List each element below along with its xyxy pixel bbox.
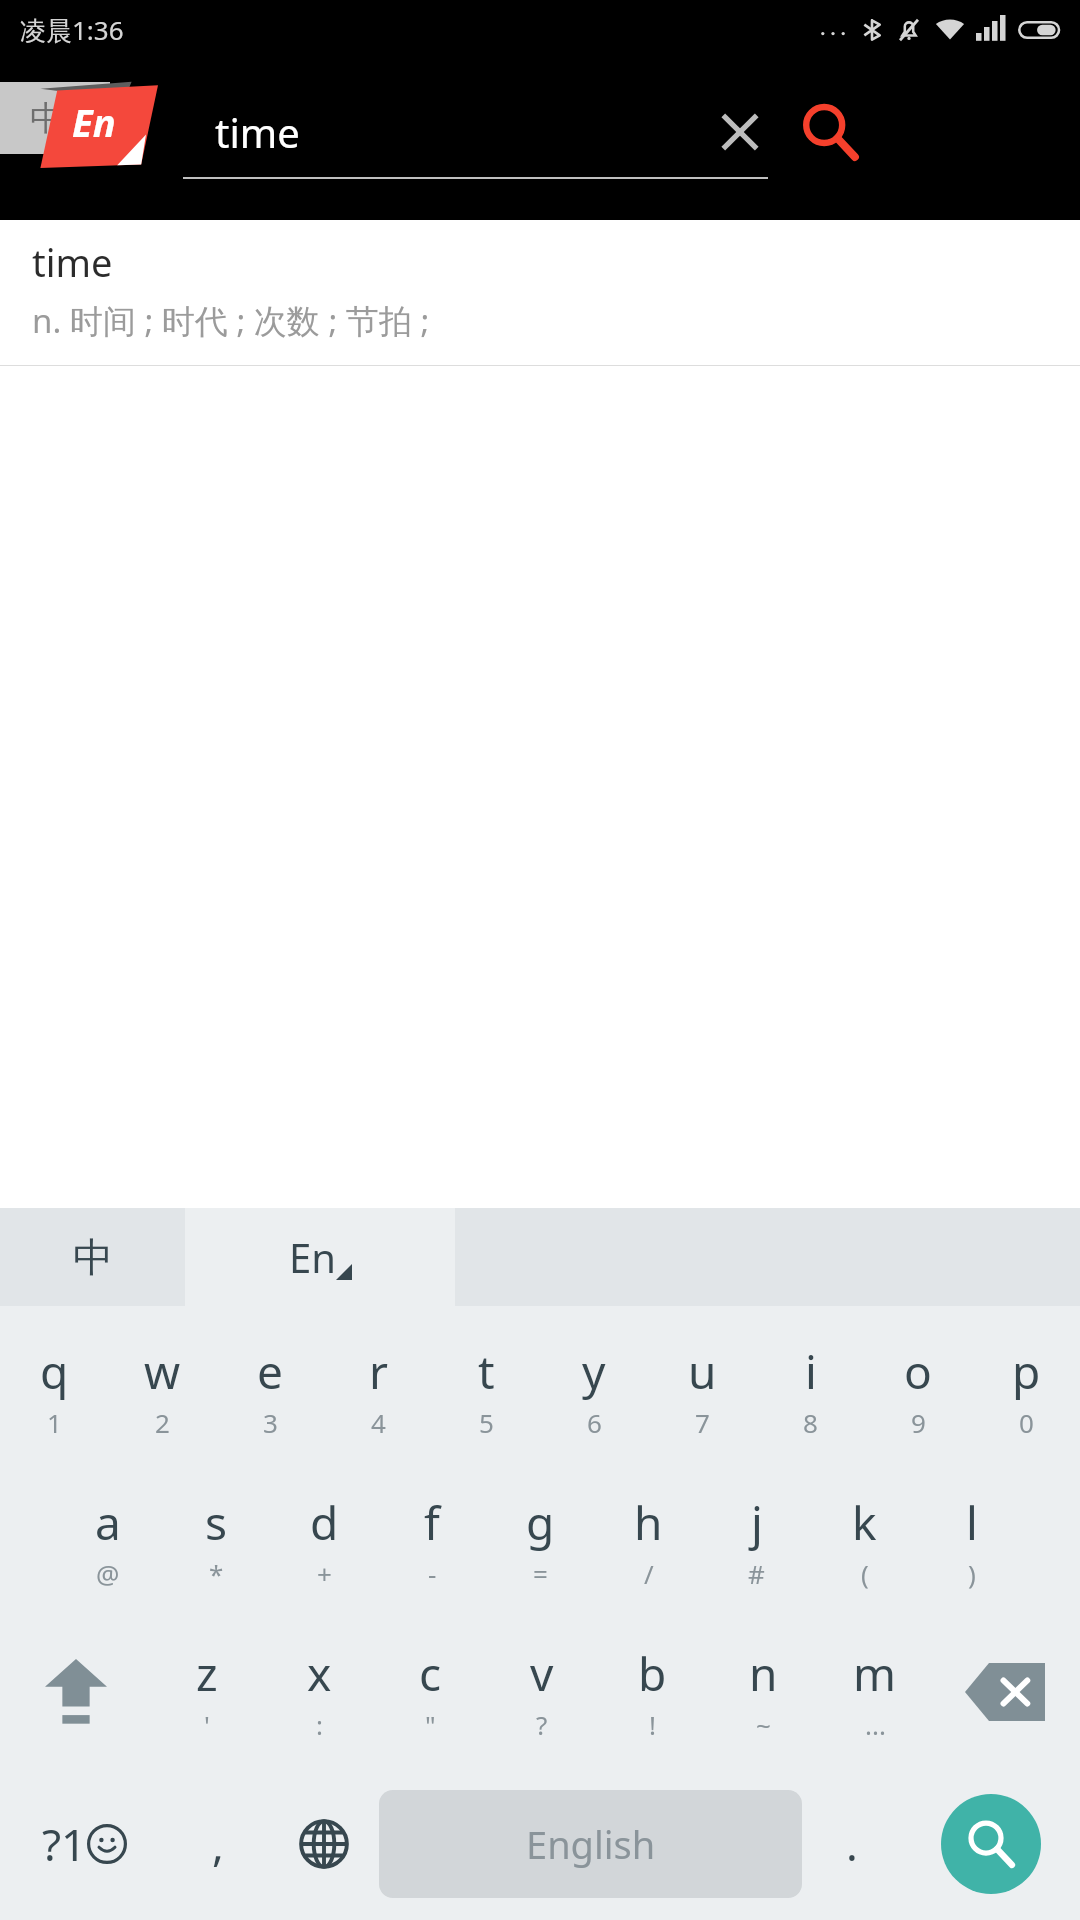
staticText: u	[688, 1340, 717, 1403]
staticText: 3	[263, 1405, 278, 1440]
staticText: c	[419, 1642, 442, 1705]
button[interactable]: Clear	[690, 82, 790, 182]
staticText: k	[852, 1491, 877, 1554]
staticText: (	[861, 1556, 869, 1591]
staticText: r	[369, 1340, 388, 1403]
staticText: 中	[30, 97, 64, 140]
staticText: #	[748, 1556, 765, 1591]
staticText: ?	[536, 1707, 548, 1742]
staticText: 9	[911, 1405, 926, 1440]
staticText: w	[144, 1340, 181, 1403]
button[interactable]: s	[162, 1465, 270, 1616]
button[interactable]: q	[0, 1314, 108, 1465]
staticText: ...	[865, 1707, 886, 1742]
button[interactable]: .	[802, 1768, 902, 1920]
button[interactable]: g	[486, 1465, 594, 1616]
staticText: 8	[803, 1405, 818, 1440]
staticText: 4	[371, 1405, 386, 1440]
button[interactable]: d	[270, 1465, 378, 1616]
staticText: ~	[756, 1707, 771, 1742]
staticText: n	[749, 1642, 778, 1705]
button[interactable]: i	[756, 1314, 864, 1465]
button[interactable]: English mode	[185, 1208, 455, 1306]
staticText: @	[96, 1556, 120, 1591]
button[interactable]: u	[648, 1314, 756, 1465]
staticText: n. 时间 ; 时代 ; 次数 ; 节拍 ;	[32, 298, 430, 343]
button[interactable]: w	[108, 1314, 216, 1465]
button[interactable]: p	[972, 1314, 1080, 1465]
button[interactable]: l	[918, 1465, 1026, 1616]
button[interactable]: Symbols and emoji	[0, 1768, 168, 1920]
staticText: j	[751, 1491, 763, 1554]
button[interactable]: y	[540, 1314, 648, 1465]
staticText: English	[526, 1818, 656, 1870]
staticText: 0	[1019, 1405, 1034, 1440]
staticText: +	[317, 1556, 332, 1591]
staticText: 7	[695, 1405, 710, 1440]
button[interactable]: n	[708, 1616, 819, 1768]
staticText: 凌晨1:36	[20, 12, 124, 48]
button[interactable]: k	[810, 1465, 918, 1616]
staticText: '	[204, 1707, 210, 1742]
staticText: En	[72, 96, 116, 148]
staticText: time	[215, 105, 300, 159]
button[interactable]: English input	[38, 80, 158, 168]
button[interactable]: Shift	[0, 1616, 151, 1768]
staticText: )	[968, 1556, 976, 1591]
staticText: 5	[479, 1405, 494, 1440]
staticText: t	[478, 1340, 495, 1403]
staticText: 中	[73, 1232, 113, 1282]
staticText: -	[428, 1556, 437, 1591]
staticText: p	[1012, 1340, 1041, 1403]
button[interactable]: h	[594, 1465, 702, 1616]
button[interactable]: b	[597, 1616, 708, 1768]
button[interactable]: m	[819, 1616, 930, 1768]
button[interactable]: e	[216, 1314, 324, 1465]
staticText: b	[638, 1642, 667, 1705]
staticText: .	[846, 1814, 858, 1874]
button[interactable]: Search	[902, 1768, 1080, 1920]
button[interactable]: o	[864, 1314, 972, 1465]
button[interactable]: z	[151, 1616, 263, 1768]
button[interactable]: Backspace	[930, 1616, 1080, 1768]
button[interactable]: English	[379, 1790, 802, 1898]
staticText: d	[310, 1491, 339, 1554]
button[interactable]: f	[378, 1465, 486, 1616]
button[interactable]: t	[432, 1314, 540, 1465]
staticText: En	[289, 1230, 336, 1284]
staticText: 1	[47, 1405, 62, 1440]
button[interactable]: Chinese input	[0, 82, 110, 154]
button[interactable]: c	[375, 1616, 486, 1768]
staticText: z	[196, 1642, 218, 1705]
staticText: i	[805, 1340, 817, 1403]
button[interactable]: Change language	[268, 1768, 379, 1920]
button[interactable]: v	[486, 1616, 597, 1768]
staticText: =	[533, 1556, 548, 1591]
staticText: ,	[212, 1814, 224, 1874]
staticText: *	[209, 1556, 224, 1591]
staticText: 2	[155, 1405, 170, 1440]
staticText: ?1	[42, 1814, 87, 1874]
button[interactable]: time	[0, 220, 1080, 366]
staticText: f	[424, 1491, 440, 1554]
staticText: g	[526, 1491, 555, 1554]
staticText: !	[649, 1707, 656, 1742]
button[interactable]: j	[702, 1465, 810, 1616]
button[interactable]: a	[54, 1465, 162, 1616]
button[interactable]: Search	[775, 77, 885, 187]
button[interactable]: x	[263, 1616, 375, 1768]
staticText: h	[634, 1491, 663, 1554]
staticText: 6	[587, 1405, 602, 1440]
button[interactable]: ,	[168, 1768, 268, 1920]
staticText: v	[530, 1642, 554, 1705]
button[interactable]: r	[324, 1314, 432, 1465]
staticText: q	[40, 1340, 69, 1403]
button[interactable]: Chinese mode	[0, 1208, 185, 1306]
staticText: m	[853, 1642, 897, 1705]
staticText: s	[205, 1491, 228, 1554]
staticText: x	[307, 1642, 332, 1705]
staticText: e	[257, 1340, 283, 1403]
staticText: time	[32, 236, 113, 288]
staticText: y	[582, 1340, 606, 1403]
